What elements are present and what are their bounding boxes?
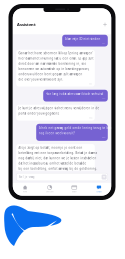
button[interactable]: New conversation (103, 22, 107, 26)
staticText: 09:42 (101, 97, 105, 99)
staticText: bij een toelichting, om ‘tot aanvraag bi… (18, 167, 97, 170)
staticText: betrekking met een toepassenbetaling. Be… (18, 151, 96, 155)
staticText: Hoe lang is dat adres waar ik toch verhu… (45, 92, 103, 96)
staticText: hier daarna het invulling laat u een ema… (18, 57, 93, 60)
staticText: 09:44 (101, 137, 105, 138)
staticText: Overzicht (46, 191, 53, 192)
staticText: Ik kan mijn ID niet vinden (64, 37, 100, 41)
staticText: Ik heb net gevraag geld om de lening ter… (38, 126, 118, 130)
staticText: 09:43 (88, 117, 92, 119)
staticText: 09:41 (101, 42, 105, 44)
staticText: die over jouw verantwoord zijn. (18, 78, 63, 81)
staticText: direct door aan naar maximale berekening… (18, 62, 86, 65)
staticText: Stel je vraag (19, 175, 35, 179)
staticText: portal onder ‘jouw gegevens’. (18, 112, 59, 115)
staticText: Betalen (72, 191, 77, 192)
staticText: 09:41 (88, 83, 92, 85)
staticText: Assistent (17, 22, 36, 27)
staticText: Contact (96, 191, 101, 192)
button[interactable]: Stel je vraag (16, 173, 108, 181)
staticText: Je kunt je adres wijzigen via het menu v… (18, 107, 99, 110)
button[interactable]: Betalen (62, 185, 87, 192)
button[interactable]: Contact (87, 185, 111, 192)
staticText: onderuw uitleen bent gegaan zult aanvrag… (18, 72, 82, 76)
staticText: dat het incassobureau om het vaststelde … (18, 162, 86, 165)
staticText: nog ik een week vooruit? (38, 131, 74, 135)
staticText: Ga naar het home scherm en klik op ‘Leni… (18, 51, 92, 55)
staticText: benoemen we automatisch op in bevestings… (18, 67, 89, 71)
staticText: nog daarbij niet, dan kunnen we je koste… (18, 156, 96, 160)
staticText: Als je zorgt op betaalt, neem je je eers… (18, 146, 82, 149)
button[interactable]: Home (13, 185, 37, 192)
button[interactable]: Overzicht (37, 185, 62, 192)
